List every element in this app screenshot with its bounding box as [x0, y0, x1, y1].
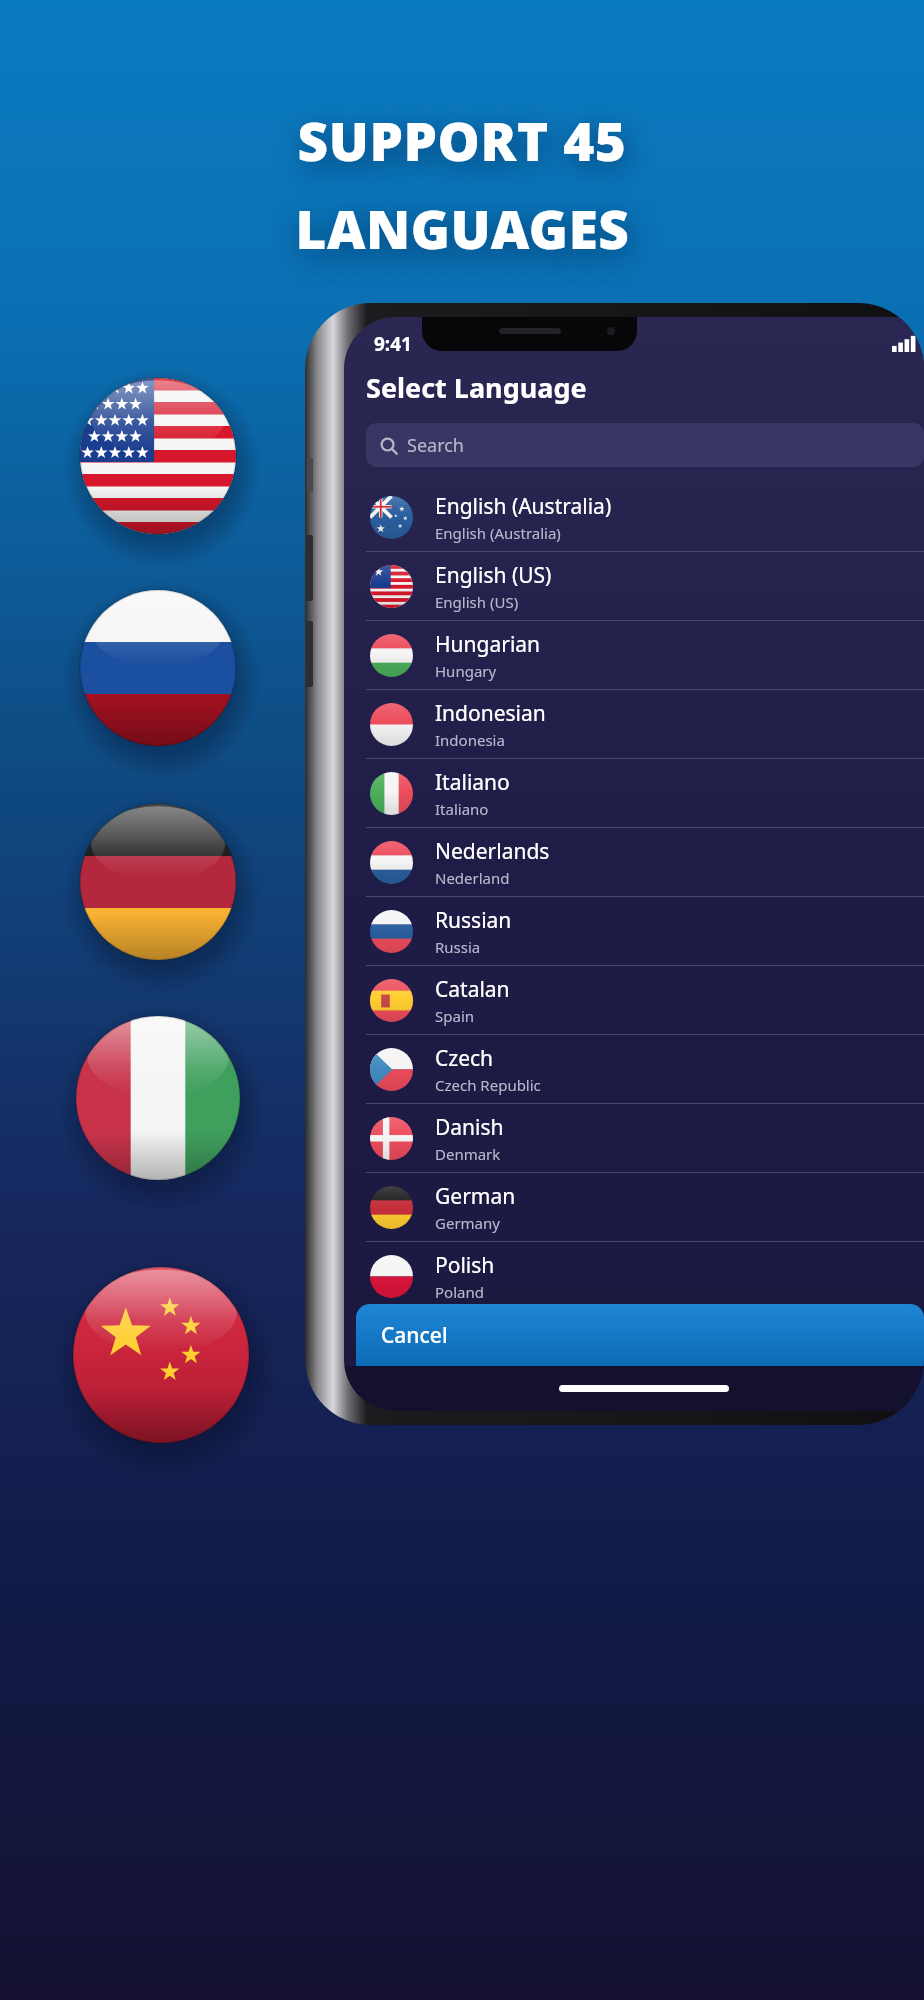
staticText: Nederlands	[435, 837, 550, 866]
staticText: English (US)	[435, 561, 552, 590]
staticText: English (US)	[435, 592, 519, 612]
staticText: Cancel	[381, 1321, 448, 1350]
staticText: Polish	[435, 1251, 495, 1280]
button[interactable]: German	[344, 1173, 924, 1241]
staticText: 9:41	[374, 331, 412, 357]
staticText: German	[435, 1182, 516, 1211]
staticText: Germany	[435, 1213, 500, 1233]
button[interactable]: Italiano	[344, 759, 924, 827]
button[interactable]: Polish	[344, 1242, 924, 1310]
staticText: Spain	[435, 1006, 475, 1026]
staticText: Search	[407, 433, 464, 458]
button[interactable]: English (US)	[344, 552, 924, 620]
button[interactable]: Catalan	[344, 966, 924, 1034]
staticText: LANGUAGES	[295, 192, 630, 264]
button[interactable]: Nederlands	[344, 828, 924, 896]
staticText: Denmark	[435, 1144, 501, 1164]
staticText: SUPPORT 45	[297, 104, 627, 176]
staticText: Indonesian	[435, 699, 546, 728]
button[interactable]: Czech	[344, 1035, 924, 1103]
staticText: Italiano	[435, 768, 510, 797]
staticText: English (Australia)	[435, 492, 612, 521]
staticText: Italiano	[435, 799, 489, 819]
staticText: Hungary	[435, 661, 497, 681]
staticText: Hungarian	[435, 630, 541, 659]
staticText: Poland	[435, 1282, 484, 1302]
button[interactable]: Danish	[344, 1104, 924, 1172]
staticText: Czech Republic	[435, 1075, 541, 1095]
staticText: Catalan	[435, 975, 510, 1004]
staticText: Nederland	[435, 868, 510, 888]
staticText: Russia	[435, 937, 481, 957]
staticText: Indonesia	[435, 730, 505, 750]
button[interactable]: Russian	[344, 897, 924, 965]
button[interactable]: Cancel	[356, 1304, 924, 1366]
staticText: Czech	[435, 1044, 494, 1073]
button[interactable]: Search	[366, 423, 924, 467]
button[interactable]: Hungarian	[344, 621, 924, 689]
staticText: Danish	[435, 1113, 504, 1142]
staticText: English (Australia)	[435, 523, 561, 543]
button[interactable]: English (Australia)	[344, 483, 924, 551]
staticText: Select Language	[366, 369, 587, 406]
button[interactable]: Indonesian	[344, 690, 924, 758]
staticText: Russian	[435, 906, 512, 935]
